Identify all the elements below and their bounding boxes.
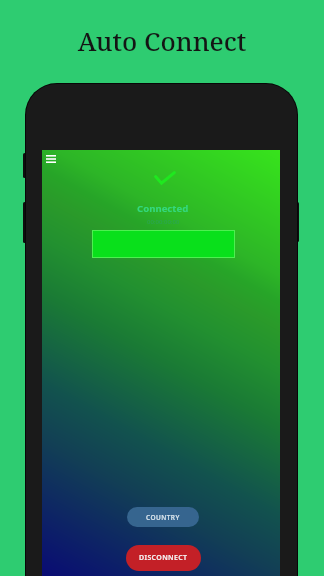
button[interactable]: Menu bbox=[41, 149, 61, 169]
button[interactable]: DISCONNECT bbox=[126, 545, 201, 571]
staticText: Connected bbox=[137, 202, 189, 215]
staticText: Auto Connect bbox=[0, 23, 324, 58]
staticText: DISCONNECT bbox=[139, 553, 188, 563]
button[interactable]: COUNTRY bbox=[127, 507, 199, 527]
staticText: 00:00:00:00 bbox=[147, 218, 180, 226]
staticText: COUNTRY bbox=[146, 513, 180, 522]
